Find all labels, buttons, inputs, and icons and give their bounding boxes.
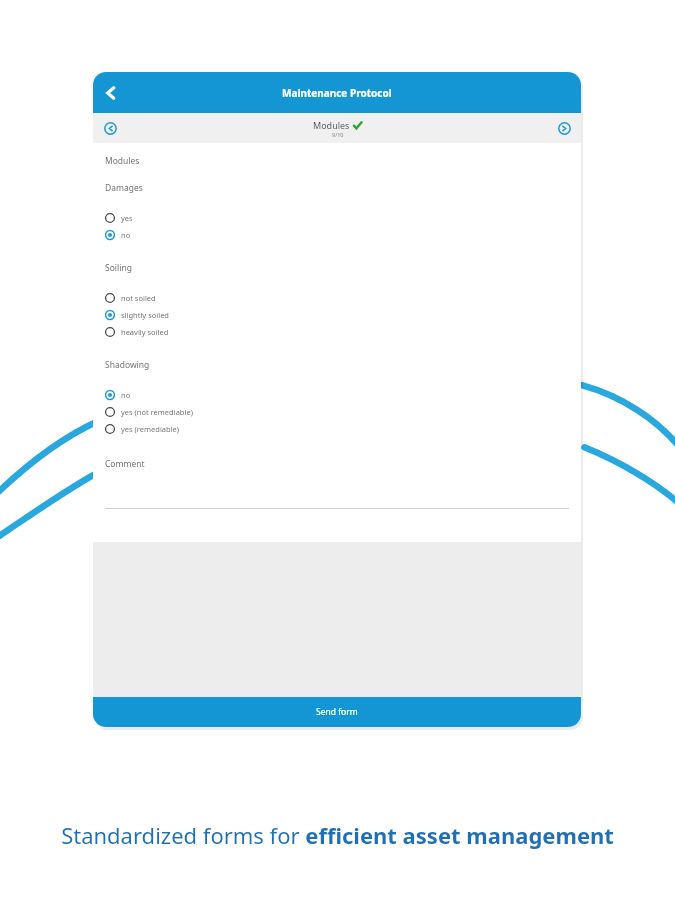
staticText: Comment bbox=[105, 458, 145, 470]
staticText: 9/10 bbox=[332, 131, 344, 138]
button[interactable]: yes bbox=[105, 209, 569, 226]
staticText: yes (not remediable) bbox=[121, 407, 193, 417]
staticText: Modules bbox=[105, 155, 140, 167]
staticText: no bbox=[121, 230, 131, 240]
staticText: slightly soiled bbox=[121, 310, 169, 320]
staticText: Modules bbox=[313, 119, 350, 131]
button[interactable]: Send form bbox=[93, 697, 581, 727]
staticText: Shadowing bbox=[105, 359, 150, 371]
button[interactable]: no bbox=[105, 386, 569, 403]
button[interactable]: slightly soiled bbox=[105, 306, 569, 323]
staticText: Send form bbox=[316, 706, 358, 718]
staticText: no bbox=[121, 390, 131, 400]
staticText: heavily soiled bbox=[121, 327, 169, 337]
button[interactable]: no bbox=[105, 226, 569, 243]
staticText: Standardized forms for efficient asset m… bbox=[61, 820, 614, 850]
button[interactable]: Back bbox=[93, 75, 129, 111]
staticText: Maintenance Protocol bbox=[282, 86, 392, 100]
button[interactable]: heavily soiled bbox=[105, 323, 569, 340]
button[interactable]: not soiled bbox=[105, 289, 569, 306]
staticText: Damages bbox=[105, 182, 143, 194]
staticText: Soiling bbox=[105, 262, 132, 274]
staticText: yes bbox=[121, 213, 133, 223]
button[interactable]: Previous module bbox=[99, 117, 121, 139]
button[interactable]: yes (remediable) bbox=[105, 420, 569, 437]
button[interactable]: yes (not remediable) bbox=[105, 403, 569, 420]
button[interactable]: Next module bbox=[553, 117, 575, 139]
staticText: not soiled bbox=[121, 293, 156, 303]
staticText: yes (remediable) bbox=[121, 424, 180, 434]
